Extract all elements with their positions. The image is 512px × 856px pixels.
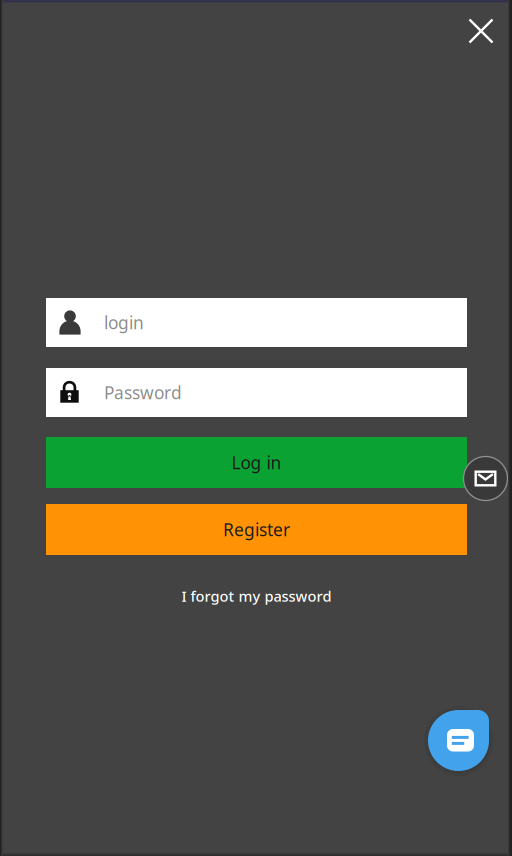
button[interactable]: I forgot my password [46,585,467,607]
button[interactable]: Password [46,368,467,417]
button[interactable]: login [46,298,467,347]
button[interactable]: Close [459,9,503,53]
staticText: Register [223,518,290,541]
button[interactable]: Email [463,456,508,501]
staticText: Log in [231,451,281,474]
button[interactable]: Log in [46,437,467,488]
staticText: login [104,311,144,334]
button[interactable]: Register [46,504,467,555]
button[interactable]: Chat [428,710,489,771]
staticText: Password [104,381,182,404]
staticText: I forgot my password [181,586,331,606]
